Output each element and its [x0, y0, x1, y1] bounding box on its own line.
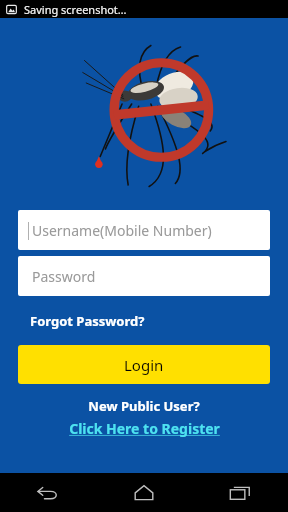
staticText: Username(Mobile Number): [32, 221, 212, 240]
button[interactable]: Back: [0, 473, 96, 512]
button[interactable]: Recent apps: [192, 473, 288, 512]
staticText: Login: [124, 355, 164, 375]
button[interactable]: Password: [18, 256, 270, 296]
staticText: Password: [32, 267, 96, 286]
staticText: New Public User?: [88, 397, 200, 415]
staticText: Forgot Password?: [30, 312, 145, 330]
button[interactable]: Login: [18, 345, 270, 384]
button[interactable]: Click Here to Register: [65, 418, 224, 439]
button[interactable]: Home: [96, 473, 192, 512]
staticText: Click Here to Register: [69, 419, 220, 438]
button[interactable]: Forgot Password?: [28, 310, 147, 332]
button[interactable]: Username(Mobile Number): [18, 210, 270, 250]
staticText: Saving screenshot…: [24, 2, 127, 17]
